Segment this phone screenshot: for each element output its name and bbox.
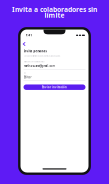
staticText: Invitar por correo electrónico	[23, 61, 44, 63]
staticText: Editor	[23, 75, 31, 79]
staticText: Invita a colaboradores sin	[12, 5, 97, 14]
button[interactable]: Enviar invitación	[23, 84, 85, 90]
staticText: 9:41	[25, 33, 32, 37]
button[interactable]: Back	[21, 40, 27, 48]
staticText: Invita personas	[23, 49, 46, 53]
staticText: martha.suarez@gmail.com	[23, 64, 54, 68]
staticText: Los nuevos miembros podrán entrar a los …	[23, 55, 60, 57]
staticText: límite	[44, 11, 64, 20]
staticText: Enviar invitación	[42, 85, 67, 89]
